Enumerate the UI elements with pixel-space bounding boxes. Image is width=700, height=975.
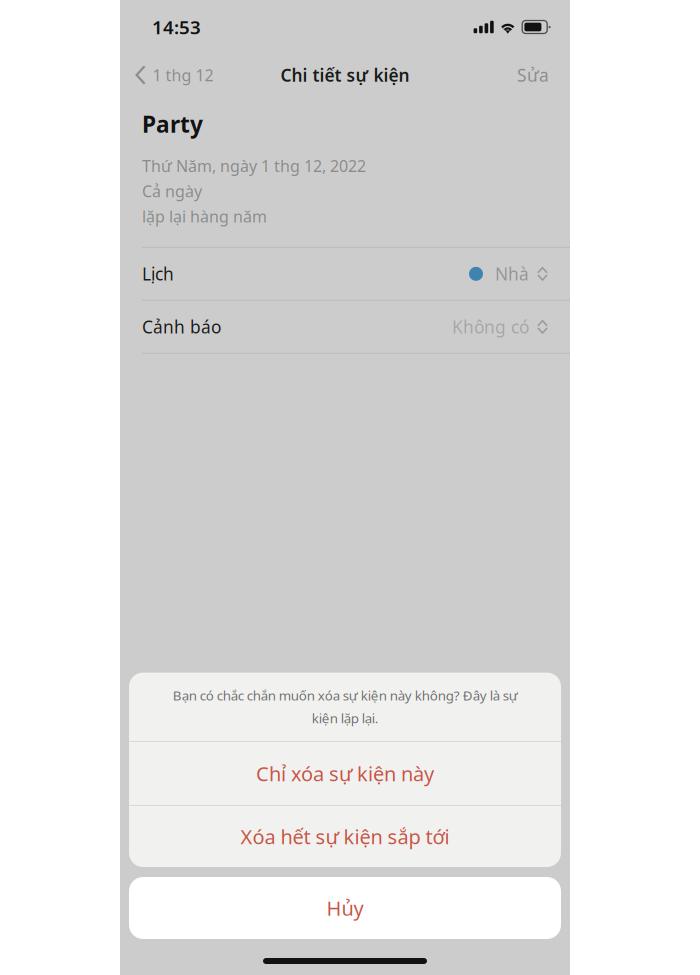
staticText: Party [142,109,203,139]
staticText: Sửa [517,63,549,86]
staticText: Chi tiết sự kiện [280,63,409,86]
staticText: lặp lại hàng năm [142,206,267,227]
staticText: Cảnh báo [142,315,221,338]
staticText: Cả ngày [142,180,202,201]
staticText: Chỉ xóa sự kiện này [256,760,434,787]
staticText: Bạn có chắc chắn muốn xóa sự kiện này kh… [172,687,517,727]
button[interactable]: Chỉ xóa sự kiện này [129,742,561,805]
button[interactable]: Cảnh báo [120,301,570,353]
staticText: Không có [452,315,529,338]
button[interactable]: Lịch [120,248,570,300]
staticText: 14:53 [152,15,201,39]
staticText: Xóa hết sự kiện sắp tới [240,823,449,850]
staticText: Nhà [495,262,529,285]
button[interactable]: Xóa hết sự kiện sắp tới [129,806,561,867]
button[interactable]: Sửa [509,55,562,94]
staticText: 1 thg 12 [152,64,213,86]
staticText: Thứ Năm, ngày 1 thg 12, 2022 [142,155,366,176]
button[interactable]: 1 thg 12 [128,56,220,94]
button[interactable]: Hủy [129,877,561,939]
staticText: Hủy [326,895,363,921]
staticText: Lịch [142,262,174,285]
